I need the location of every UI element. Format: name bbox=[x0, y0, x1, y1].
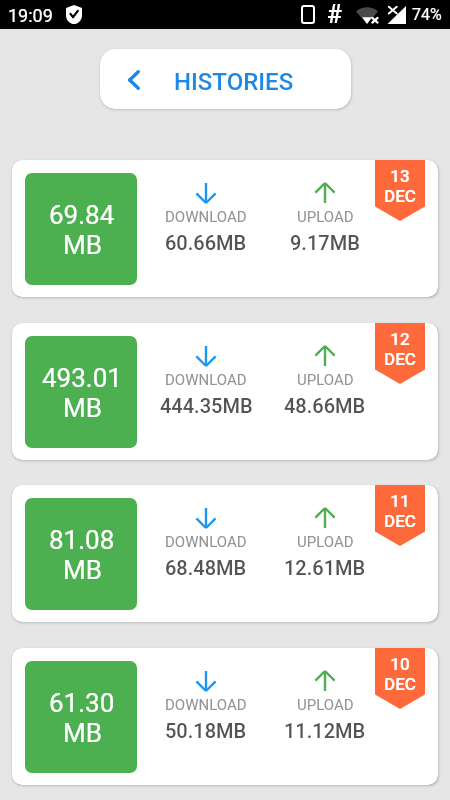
staticText: 19:09 bbox=[8, 5, 53, 26]
staticText: 444.35MB bbox=[160, 394, 253, 417]
button[interactable]: 493.01 bbox=[12, 323, 438, 460]
staticText: UPLOAD bbox=[297, 696, 354, 714]
staticText: 11 bbox=[390, 491, 410, 511]
staticText: 13 bbox=[390, 166, 410, 186]
staticText: 68.48MB bbox=[165, 556, 247, 579]
staticText: 493.01 bbox=[42, 363, 122, 393]
staticText: DOWNLOAD bbox=[165, 371, 247, 389]
staticText: DEC bbox=[384, 349, 416, 369]
staticText: UPLOAD bbox=[297, 208, 354, 226]
staticText: 12.61MB bbox=[284, 556, 366, 579]
staticText: UPLOAD bbox=[297, 371, 354, 389]
staticText: MB bbox=[63, 393, 102, 423]
staticText: MB bbox=[63, 230, 102, 260]
staticText: MB bbox=[63, 555, 102, 585]
staticText: MB bbox=[63, 718, 102, 748]
button[interactable]: Back bbox=[100, 49, 351, 109]
staticText: DEC bbox=[384, 186, 416, 206]
button[interactable]: Back bbox=[109, 49, 159, 109]
staticText: UPLOAD bbox=[297, 533, 354, 551]
staticText: DEC bbox=[384, 511, 416, 531]
staticText: HISTORIES bbox=[174, 68, 294, 96]
button[interactable]: 69.84 bbox=[12, 160, 438, 297]
staticText: 60.66MB bbox=[165, 231, 247, 254]
button[interactable]: 61.30 bbox=[12, 648, 438, 785]
staticText: 9.17MB bbox=[290, 231, 360, 254]
staticText: 74% bbox=[412, 5, 442, 24]
staticText: # bbox=[327, 0, 343, 29]
staticText: 81.08 bbox=[49, 525, 115, 555]
staticText: DOWNLOAD bbox=[165, 533, 247, 551]
staticText: DOWNLOAD bbox=[165, 208, 247, 226]
staticText: DOWNLOAD bbox=[165, 696, 247, 714]
staticText: 61.30 bbox=[49, 688, 115, 718]
staticText: 12 bbox=[390, 329, 410, 349]
staticText: 69.84 bbox=[49, 200, 115, 230]
staticText: 11.12MB bbox=[284, 719, 366, 742]
button[interactable]: 81.08 bbox=[12, 485, 438, 622]
staticText: DEC bbox=[384, 674, 416, 694]
staticText: 48.66MB bbox=[284, 394, 366, 417]
staticText: 50.18MB bbox=[165, 719, 247, 742]
staticText: 10 bbox=[390, 654, 410, 674]
